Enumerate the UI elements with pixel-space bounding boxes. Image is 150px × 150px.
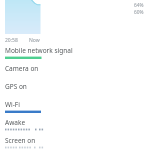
staticText: Camera on (5, 64, 39, 73)
button[interactable]: GPS on (0, 82, 150, 100)
staticText: 60% (134, 9, 144, 16)
staticText: Mobile network signal (5, 46, 73, 55)
button[interactable]: Wi-Fi (0, 100, 150, 118)
staticText: 64% (134, 2, 144, 9)
button[interactable]: Awake (0, 118, 150, 136)
button[interactable]: Camera on (0, 64, 150, 82)
staticText: Screen on (5, 136, 36, 145)
staticText: 20:58 (5, 37, 18, 44)
staticText: Awake (5, 118, 26, 127)
staticText: Wi-Fi (5, 100, 20, 109)
staticText: GPS on (5, 82, 27, 91)
staticText: Now (29, 37, 40, 44)
button[interactable]: Screen on (0, 136, 150, 150)
button[interactable]: Mobile network signal (0, 46, 150, 64)
